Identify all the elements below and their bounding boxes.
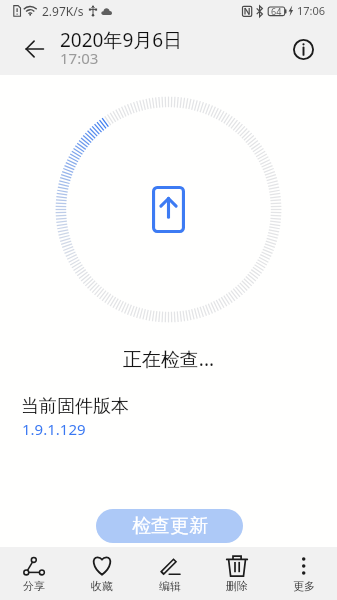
staticText: 编辑	[159, 579, 181, 593]
staticText: 收藏	[91, 579, 113, 593]
staticText: 17:06	[297, 3, 326, 18]
staticText: 正在检查...	[0, 346, 337, 372]
staticText: 2.97K/s	[42, 3, 84, 19]
staticText: 检查更新	[132, 514, 208, 538]
staticText: 当前固件版本	[21, 395, 129, 418]
staticText: 1.9.1.129	[22, 419, 86, 439]
staticText: 更多	[293, 579, 315, 593]
button[interactable]: Info	[285, 31, 321, 67]
button[interactable]: 收藏	[68, 547, 136, 600]
staticText: 分享	[23, 579, 45, 593]
button[interactable]: 删除	[203, 547, 270, 600]
button[interactable]: Back	[17, 31, 53, 67]
staticText: 17:03	[60, 48, 99, 68]
button[interactable]: 更多	[270, 547, 337, 600]
button[interactable]: 检查更新	[96, 509, 243, 543]
staticText: 64	[271, 5, 282, 17]
button[interactable]: 分享	[0, 547, 68, 600]
staticText: 删除	[226, 579, 248, 593]
staticText: 2020年9月6日	[60, 27, 183, 53]
button[interactable]: 编辑	[136, 547, 203, 600]
